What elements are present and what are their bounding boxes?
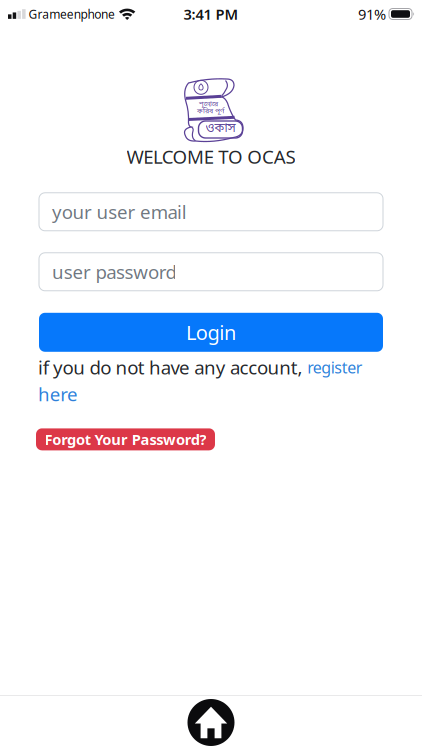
button[interactable]: your user email <box>39 193 383 231</box>
button[interactable]: Home <box>187 699 234 746</box>
staticText: here <box>38 382 78 406</box>
button[interactable]: Login <box>39 313 383 352</box>
staticText: শূন্যেরে <box>199 100 218 109</box>
staticText: ওকাস <box>205 121 235 137</box>
staticText: user password <box>52 259 176 284</box>
staticText: Forgot Your Password? <box>44 430 206 449</box>
button[interactable]: Forgot Your Password? <box>36 428 215 450</box>
staticText: Grameenphone <box>29 6 115 22</box>
staticText: 3:41 PM <box>183 4 238 24</box>
staticText: 91% <box>358 4 386 24</box>
button[interactable]: user password <box>39 253 383 291</box>
staticText: if you do not have any account, <box>38 355 307 380</box>
button[interactable]: register <box>307 357 363 378</box>
button[interactable]: here <box>38 382 78 406</box>
staticText: your user email <box>52 199 187 224</box>
staticText: Login <box>186 319 236 346</box>
staticText: WELCOME TO OCAS <box>127 144 295 169</box>
staticText: register <box>307 357 363 378</box>
staticText: করিব পূর্ণ <box>197 107 224 116</box>
